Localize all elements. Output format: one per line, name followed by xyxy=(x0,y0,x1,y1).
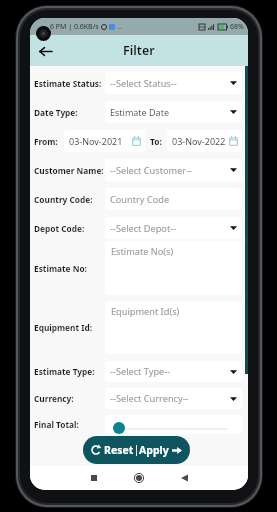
staticText: Country Code xyxy=(110,193,170,206)
button[interactable]: --Select Currency-- xyxy=(105,388,242,409)
staticText: --Select Status-- xyxy=(110,77,177,90)
staticText: 03-Nov-2021 xyxy=(69,135,123,147)
staticText: 68% xyxy=(230,22,244,32)
staticText: Estimate Type: xyxy=(34,366,95,377)
other: Pick date xyxy=(132,136,141,146)
button[interactable]: Back xyxy=(33,39,57,63)
other: Pick date xyxy=(229,136,238,146)
staticText: Reset xyxy=(104,443,134,457)
staticText: --Select Currency-- xyxy=(110,392,189,405)
button[interactable]: Final total slider xyxy=(105,415,242,434)
staticText: .. xyxy=(118,22,122,32)
button[interactable]: --Select Depot-- xyxy=(105,217,242,239)
staticText: Equipment Id(s) xyxy=(111,305,180,318)
staticText: --Select Customer-- xyxy=(110,164,193,177)
staticText: Depot Code: xyxy=(34,223,85,234)
staticText: 03-Nov-2022 xyxy=(172,135,226,147)
button[interactable]: Equipment Id(s) xyxy=(105,301,242,354)
button[interactable]: --Select Customer-- xyxy=(105,159,242,181)
staticText: Apply xyxy=(139,443,169,457)
staticText: Date Type: xyxy=(34,107,78,118)
button[interactable]: Estimate Date xyxy=(105,101,242,123)
staticText: --Select Depot-- xyxy=(110,222,177,235)
staticText: Currency: xyxy=(34,393,74,404)
staticText: Estimate Status: xyxy=(34,78,102,89)
staticText: Filter xyxy=(123,42,155,59)
button[interactable]: Reset xyxy=(83,436,190,464)
button[interactable]: Home xyxy=(130,469,148,487)
staticText: From: xyxy=(34,136,58,147)
staticText: Estimate Date xyxy=(110,106,169,118)
staticText: 6 PM | 0.6KB/s xyxy=(50,22,99,32)
button[interactable]: Back xyxy=(175,469,193,487)
staticText: Estimate No(s) xyxy=(111,245,174,258)
button[interactable]: Estimate No(s) xyxy=(105,241,242,295)
staticText: Equipment Id: xyxy=(34,322,93,333)
button[interactable]: --Select Status-- xyxy=(105,72,242,94)
button[interactable]: Recent apps xyxy=(85,469,103,487)
staticText: Customer Name: xyxy=(34,165,104,176)
button[interactable]: Country Code xyxy=(105,188,242,210)
staticText: Estimate No: xyxy=(34,263,87,274)
button[interactable]: --Select Type-- xyxy=(105,361,242,382)
staticText: --Select Type-- xyxy=(110,365,171,378)
button[interactable]: 03-Nov-2022 xyxy=(167,130,242,152)
staticText: Final Total: xyxy=(34,419,79,430)
button[interactable]: 03-Nov-2021 xyxy=(64,130,145,152)
staticText: To: xyxy=(150,136,162,147)
staticText: Country Code: xyxy=(34,194,93,205)
